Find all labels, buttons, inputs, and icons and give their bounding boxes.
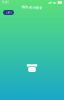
staticText: Calls xyxy=(5,11,11,14)
staticText: Whatsapp xyxy=(21,4,42,10)
staticText: 9:41 xyxy=(2,1,9,4)
button[interactable]: Calls xyxy=(3,10,14,15)
